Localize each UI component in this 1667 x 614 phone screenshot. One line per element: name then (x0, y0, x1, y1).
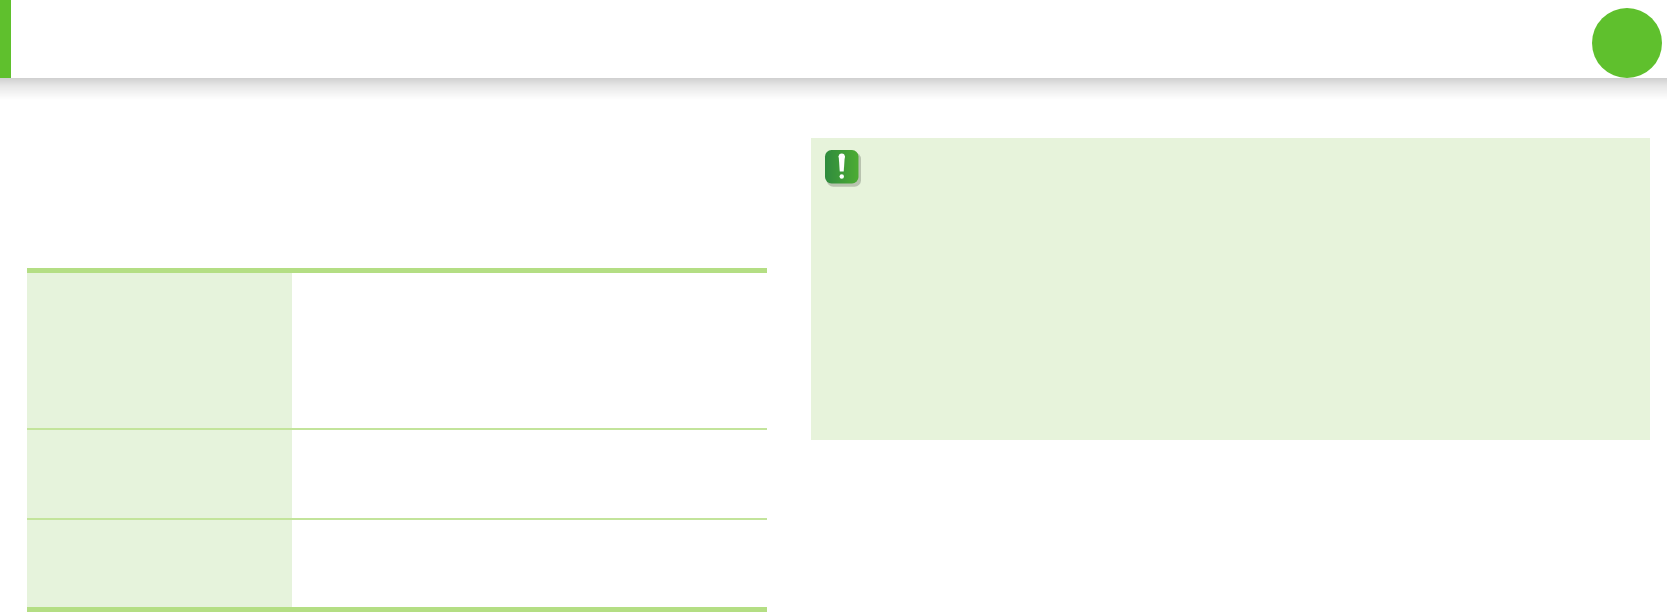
button[interactable]: Row 2 (27, 428, 767, 518)
button[interactable]: Menu (1592, 8, 1662, 78)
button[interactable]: Row 3 (27, 518, 767, 612)
button[interactable]: Row 1 (27, 268, 767, 428)
button[interactable]: Important note (811, 138, 1650, 440)
other: Important note (825, 150, 861, 186)
